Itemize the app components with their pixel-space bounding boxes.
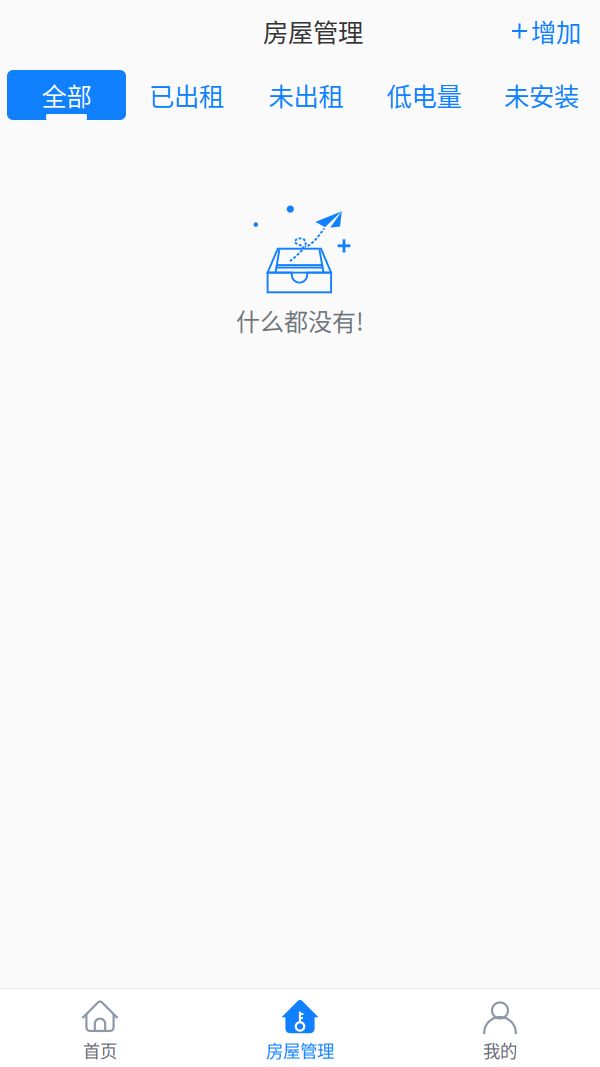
button[interactable]: 增加 [499,5,600,57]
staticText: 什么都没有! [236,303,364,338]
button[interactable]: 低电量 [365,70,483,120]
button[interactable]: 已出租 [126,70,247,120]
button[interactable]: 我的 [400,989,600,1065]
staticText: 房屋管理 [263,13,363,49]
staticText: 我的 [483,1037,517,1063]
staticText: 未出租 [268,77,343,113]
staticText: 低电量 [386,77,461,113]
staticText: 全部 [41,77,91,113]
button[interactable]: 未安装 [483,70,600,120]
button[interactable]: 全部 [7,70,126,120]
button[interactable]: 房屋管理 [200,989,400,1065]
staticText: 增加 [531,13,581,49]
staticText: 未安装 [504,77,579,113]
staticText: 房屋管理 [266,1037,334,1063]
button[interactable]: 首页 [0,989,200,1065]
staticText: 已出租 [149,77,224,113]
staticText: 首页 [83,1037,117,1063]
button[interactable]: 未出租 [247,70,365,120]
